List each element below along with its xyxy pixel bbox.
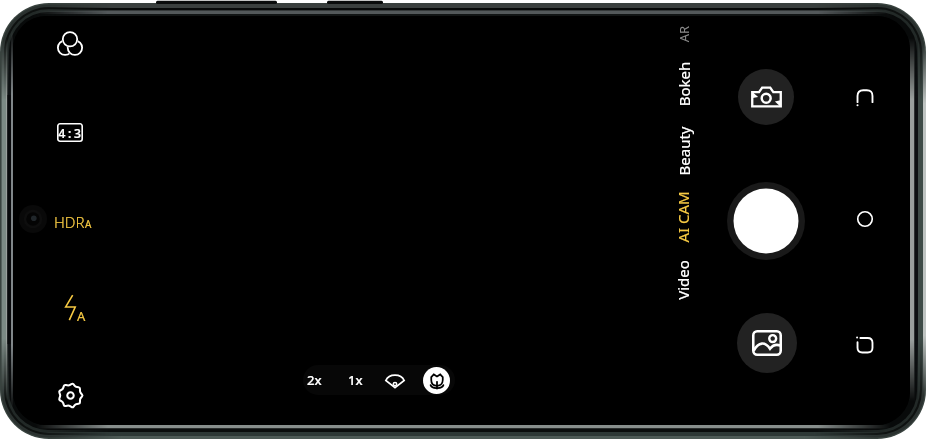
staticText: Beauty [673, 126, 693, 175]
staticText: Video [673, 260, 693, 300]
button[interactable]: Recents [847, 327, 883, 363]
staticText: AR [674, 25, 692, 42]
staticText: A [77, 307, 86, 325]
button[interactable]: AI CAM [635, 200, 731, 234]
button[interactable]: Home [847, 201, 883, 237]
staticText: 4:3 [58, 124, 82, 142]
button[interactable]: Video [635, 263, 731, 297]
button[interactable]: AR [635, 17, 731, 51]
staticText: 2x [307, 371, 322, 389]
button[interactable]: Wide angle [376, 365, 414, 395]
button[interactable]: Switch camera [738, 69, 794, 125]
button[interactable]: Beauty [635, 134, 731, 168]
button[interactable]: Aspect ratio 4:3 [48, 110, 92, 154]
staticText: 1x [348, 371, 363, 389]
button[interactable]: HDR [54, 208, 92, 232]
staticText: Bokeh [673, 61, 693, 106]
button[interactable]: Filters [48, 21, 92, 65]
button[interactable]: 1x [335, 365, 375, 395]
staticText: A [85, 217, 92, 231]
button[interactable]: 2x [303, 365, 335, 395]
button[interactable]: Macro [419, 365, 453, 395]
button[interactable]: Gallery [737, 313, 797, 373]
button[interactable]: Bokeh [635, 67, 731, 101]
button[interactable]: Back [847, 78, 883, 114]
button[interactable]: Settings [48, 373, 92, 417]
staticText: HDR [54, 212, 85, 232]
button[interactable]: Shutter [727, 182, 805, 260]
staticText: AI CAM [673, 191, 693, 243]
button[interactable]: Flash auto [56, 286, 100, 328]
